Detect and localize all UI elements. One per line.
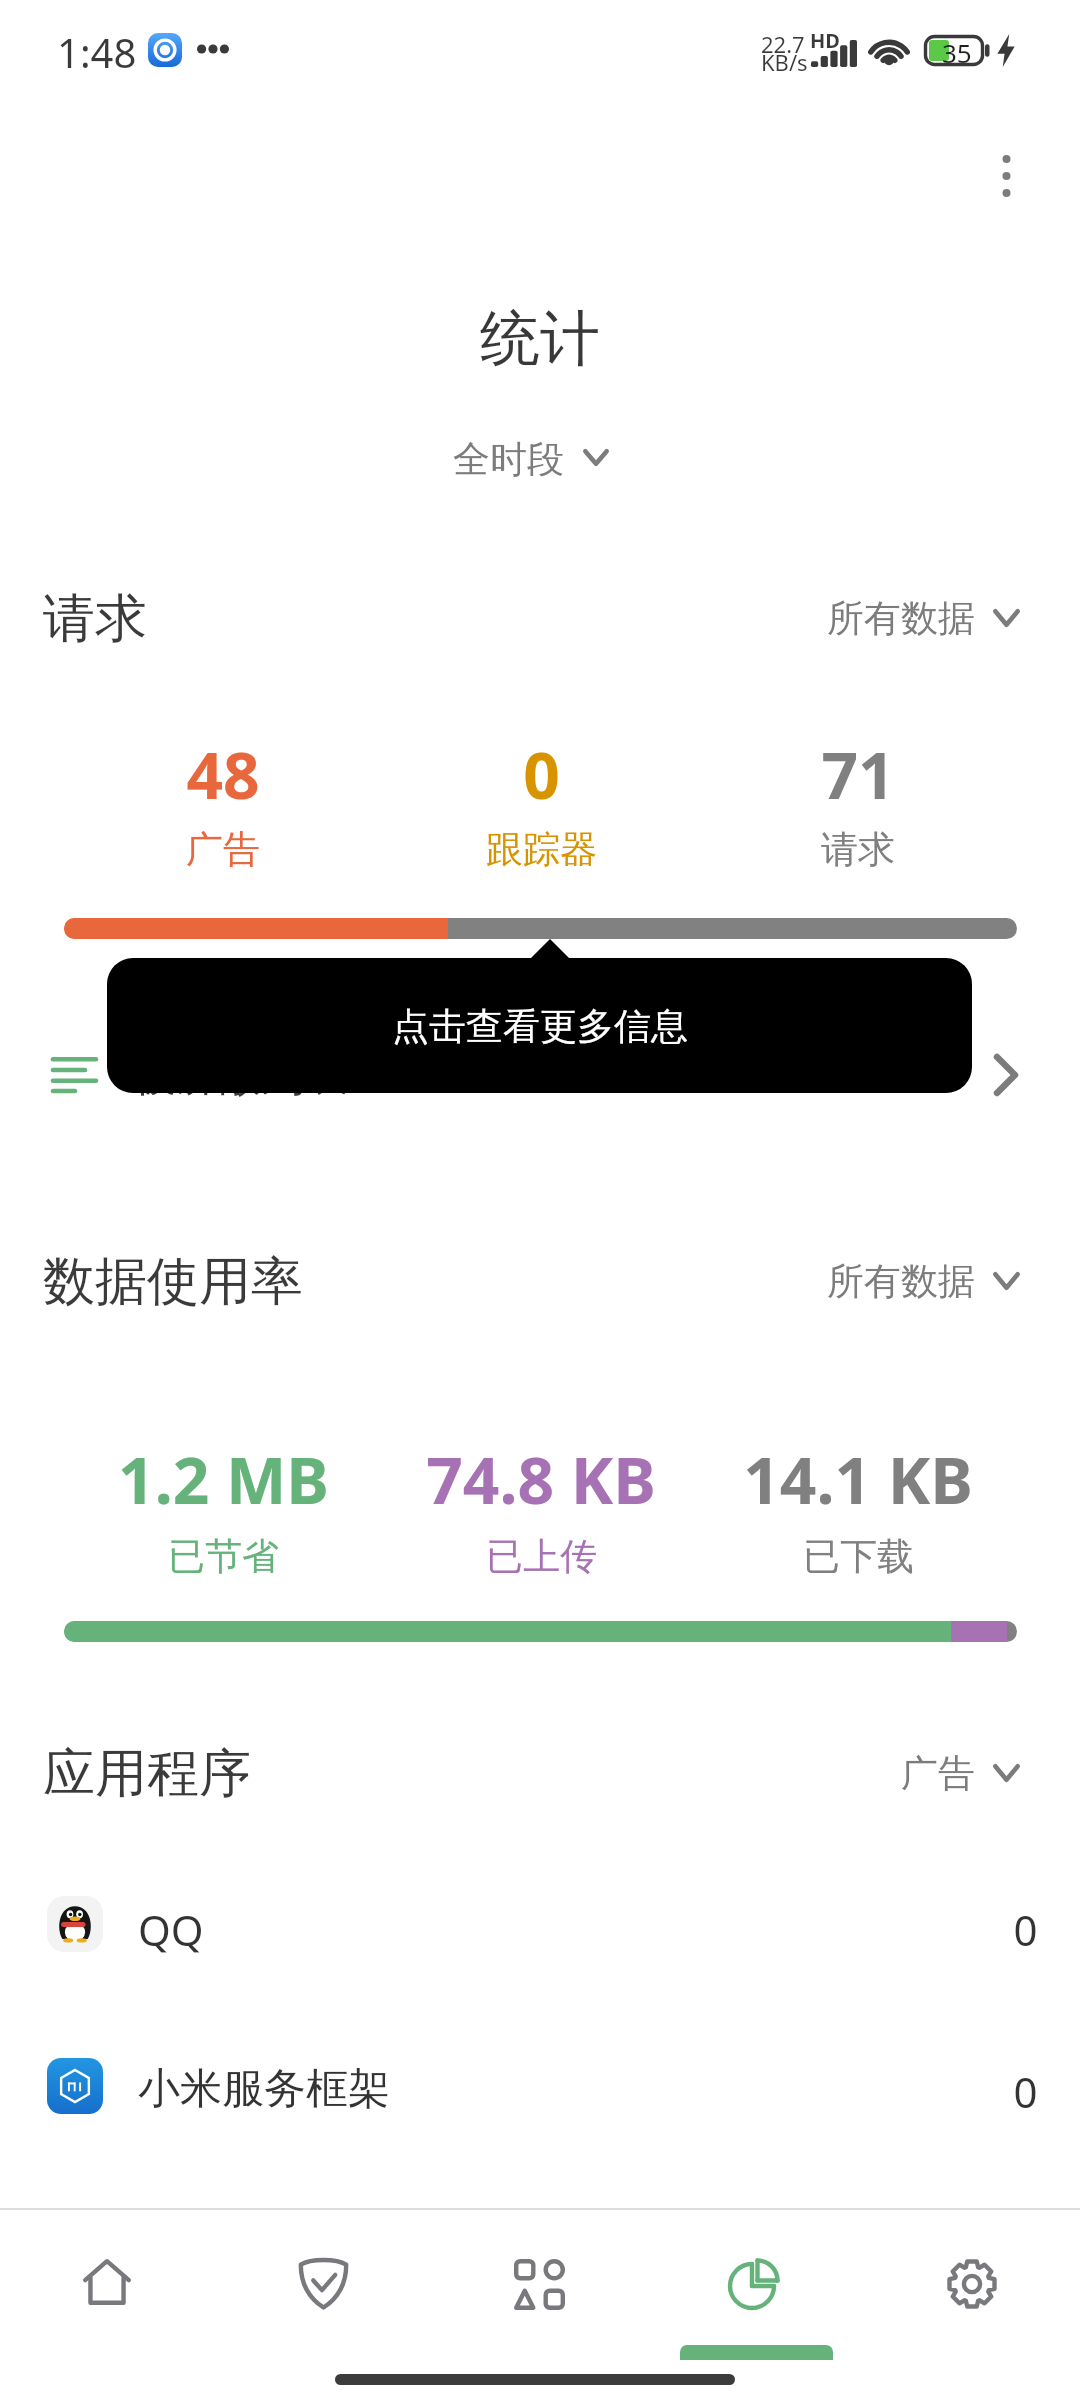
staticText: 0	[1013, 2063, 1038, 2120]
staticText: 所有数据	[827, 595, 975, 642]
staticText: QQ	[138, 1901, 204, 1958]
staticText: 数据使用率	[43, 1249, 303, 1315]
button[interactable]: 广告	[790, 1733, 1035, 1813]
staticText: 全时段	[453, 436, 564, 483]
button[interactable]: More options	[966, 136, 1046, 216]
button[interactable]: 小米服务框架	[0, 2036, 1080, 2136]
button[interactable]: 所有数据	[790, 578, 1035, 658]
staticText: 广告	[186, 826, 260, 873]
staticText: 1:48	[57, 25, 137, 79]
button[interactable]: Settings	[864, 2210, 1080, 2400]
staticText: 应用程序	[43, 1741, 251, 1807]
staticText: 所有数据	[827, 1258, 975, 1305]
button[interactable]: 被屏蔽列表	[0, 1020, 1080, 1150]
button[interactable]: Apps	[432, 2210, 648, 2400]
button[interactable]: 点击查看更多信息	[107, 958, 972, 1093]
staticText: 48	[186, 731, 260, 818]
button[interactable]: QQ	[0, 1874, 1080, 1974]
staticText: 跟踪器	[486, 826, 597, 873]
staticText: KB/s	[761, 47, 808, 77]
button[interactable]: 所有数据	[790, 1241, 1035, 1321]
staticText: 1.2 MB	[118, 1436, 329, 1523]
button[interactable]: Home	[0, 2210, 216, 2400]
staticText: 已节省	[168, 1533, 279, 1580]
button[interactable]: Protection	[216, 2210, 432, 2400]
staticText: 35	[942, 35, 972, 66]
staticText: 74.8 KB	[426, 1436, 656, 1523]
staticText: 14.1 KB	[743, 1436, 973, 1523]
staticText: 0	[1013, 1901, 1038, 1958]
staticText: 71	[821, 731, 895, 818]
staticText: 点击查看更多信息	[392, 1003, 688, 1050]
staticText: 小米服务框架	[138, 2063, 390, 2116]
button[interactable]: 全时段	[420, 422, 660, 496]
staticText: 请求	[43, 586, 147, 652]
staticText: HD	[810, 27, 840, 54]
staticText: 广告	[901, 1750, 975, 1797]
staticText: 0	[523, 731, 560, 818]
staticText: 已上传	[486, 1533, 597, 1580]
button[interactable]: Statistics	[648, 2210, 864, 2400]
staticText: 已下载	[803, 1533, 914, 1580]
staticText: 统计	[480, 301, 600, 377]
staticText: 被屏蔽列表	[133, 1049, 348, 1103]
staticText: 22.7	[761, 29, 805, 59]
staticText: 请求	[821, 826, 895, 873]
